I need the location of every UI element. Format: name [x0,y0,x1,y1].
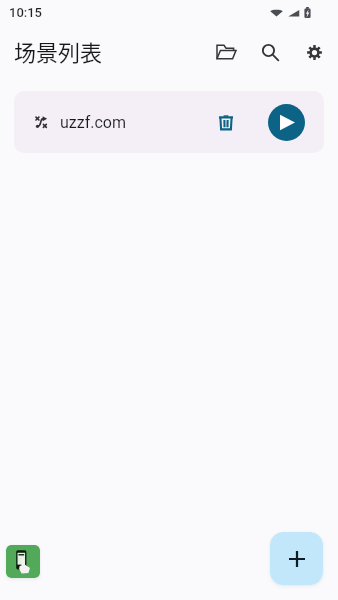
button[interactable]: Auto click widget [6,545,40,578]
staticText: 场景列表 [14,35,103,67]
button[interactable]: Add scene [270,532,323,585]
button[interactable]: uzzf.com [14,91,324,153]
staticText: uzzf.com [60,113,127,132]
staticText: 10:15 [9,5,43,20]
button[interactable]: Search [250,32,290,72]
button[interactable]: Delete [209,105,243,139]
button[interactable]: Settings [294,32,334,72]
button[interactable]: Play [268,104,305,141]
button[interactable]: Folder [206,32,246,72]
